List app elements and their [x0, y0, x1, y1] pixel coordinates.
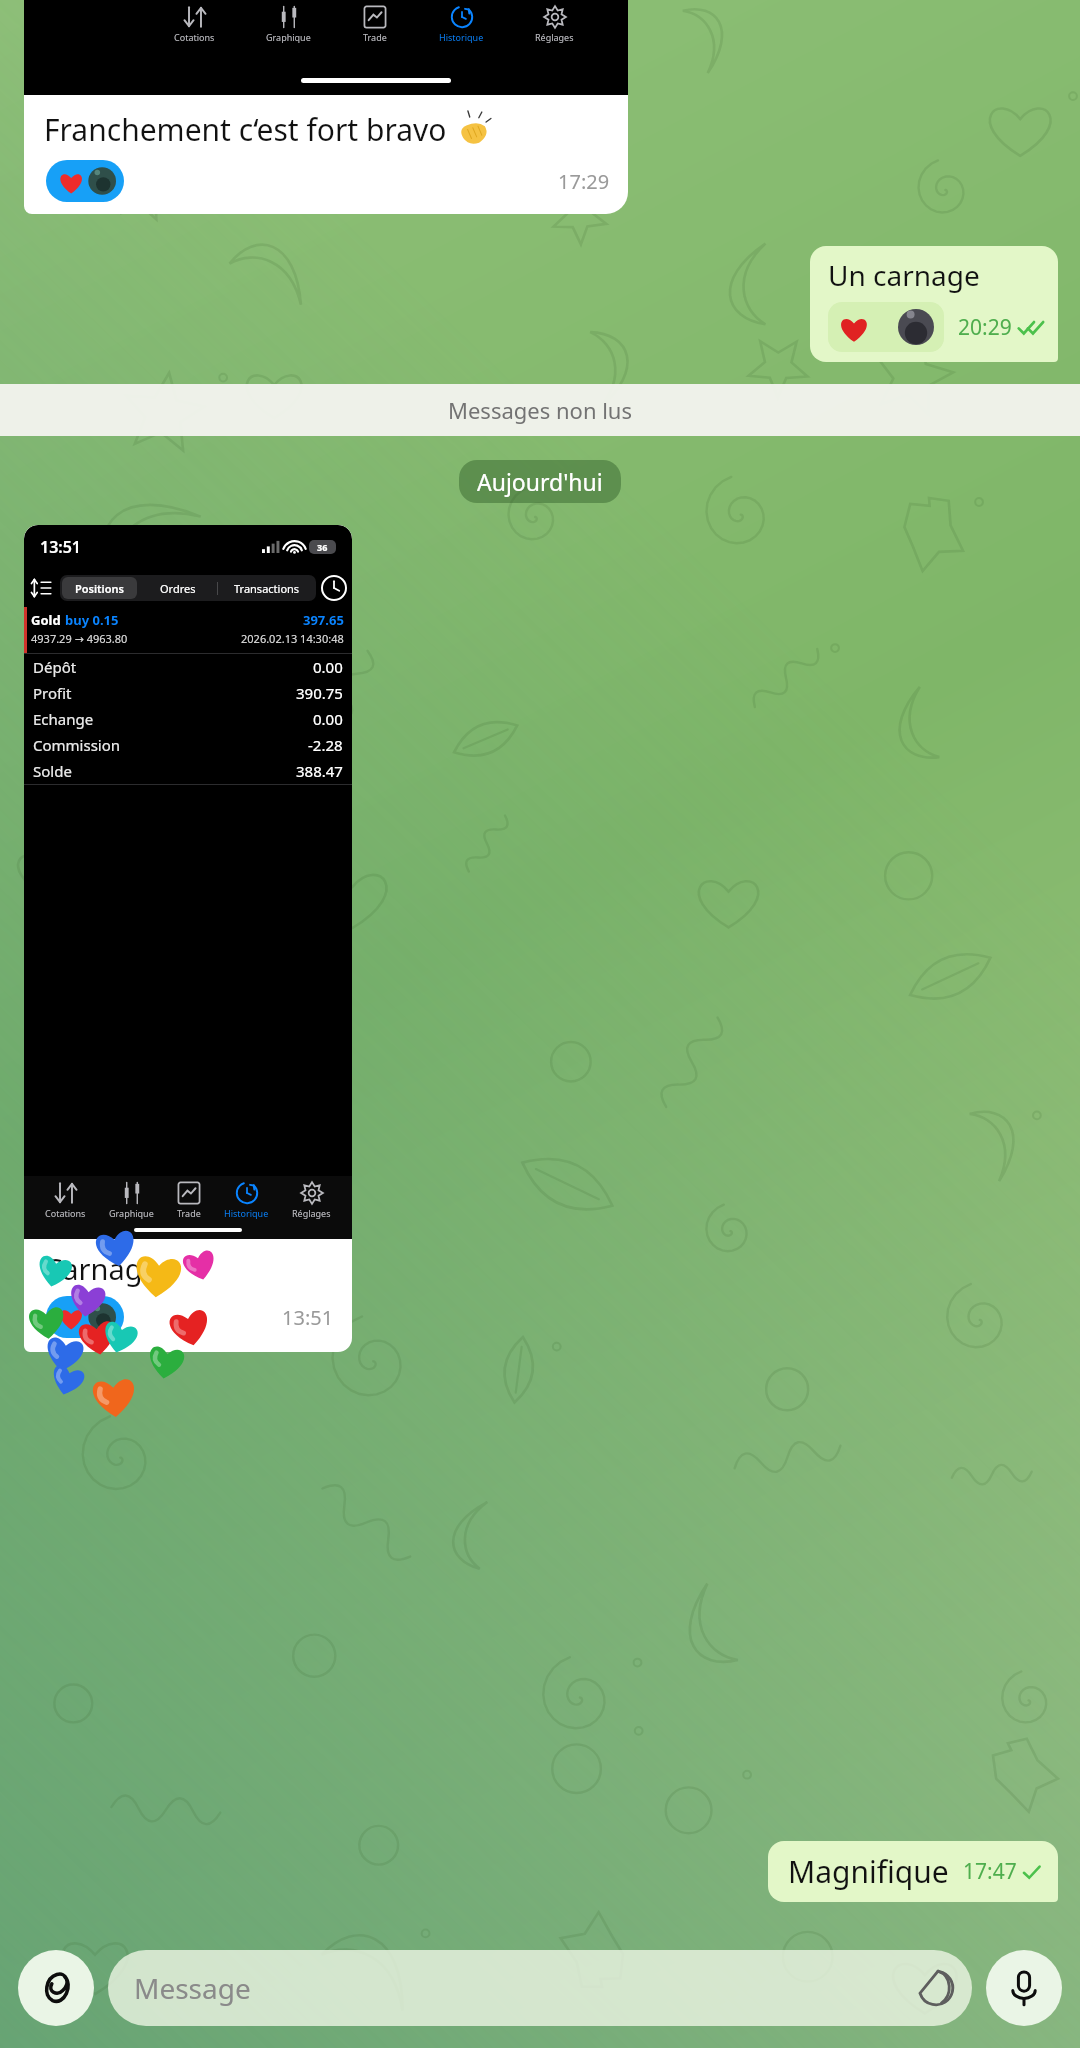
staticText: Positions: [75, 581, 124, 596]
staticText: 397.65: [303, 611, 344, 629]
staticText: Trade: [363, 31, 387, 43]
button[interactable]: Positions: [62, 577, 137, 599]
staticText: 20:29: [958, 313, 1012, 342]
button[interactable]: Cotations: [24, 0, 628, 214]
staticText: Commission: [33, 735, 121, 755]
button[interactable]: Cotations: [172, 6, 217, 43]
staticText: Historique: [439, 31, 484, 43]
button[interactable]: Reaction heart: [46, 1296, 124, 1338]
staticText: Franchement c‘est fort bravo: [44, 109, 447, 150]
staticText: Réglages: [535, 31, 574, 43]
staticText: Solde: [33, 761, 72, 781]
staticText: Réglages: [292, 1207, 331, 1219]
staticText: 13:51: [282, 1304, 334, 1331]
button[interactable]: 13:51: [24, 525, 352, 1352]
staticText: Carnage: [44, 1249, 159, 1288]
button[interactable]: Réglages: [290, 1182, 333, 1219]
button[interactable]: Attach: [18, 1950, 94, 2026]
staticText: Messages non lus: [448, 395, 633, 425]
staticText: Graphique: [109, 1207, 154, 1219]
staticText: 0.00: [313, 657, 343, 677]
staticText: Echange: [33, 709, 94, 729]
staticText: -2.28: [308, 735, 343, 755]
button[interactable]: Trade: [175, 1182, 203, 1219]
staticText: Cotations: [45, 1207, 86, 1219]
button[interactable]: Graphique: [264, 6, 313, 43]
button[interactable]: Historique: [222, 1182, 271, 1219]
staticText: Graphique: [266, 31, 311, 43]
staticText: 388.47: [296, 761, 343, 781]
button[interactable]: Reaction heart: [828, 302, 944, 352]
staticText: 4937.29 → 4963.80: [31, 631, 128, 646]
button[interactable]: Reaction heart: [46, 160, 124, 202]
button[interactable]: Réglages: [533, 6, 576, 43]
staticText: Magnifique: [788, 1851, 949, 1892]
staticText: Trade: [177, 1207, 201, 1219]
staticText: Cotations: [174, 31, 215, 43]
button[interactable]: Graphique: [107, 1182, 156, 1219]
staticText: Profit: [33, 683, 72, 703]
button[interactable]: Magnifique: [768, 1841, 1058, 1902]
button[interactable]: Stickers: [916, 1968, 956, 2008]
staticText: Historique: [224, 1207, 269, 1219]
staticText: 0.00: [313, 709, 343, 729]
staticText: Aujourd'hui: [477, 466, 603, 497]
button[interactable]: Message: [108, 1950, 972, 2026]
staticText: Transactions: [234, 581, 300, 596]
button[interactable]: Record voice message: [986, 1950, 1062, 2026]
staticText: Ordres: [160, 581, 196, 596]
button[interactable]: Un carnage: [810, 246, 1058, 362]
staticText: 36: [317, 541, 328, 553]
staticText: 17:29: [558, 168, 610, 195]
button[interactable]: History: [324, 578, 344, 598]
staticText: Message: [134, 1969, 251, 2007]
button[interactable]: Aujourd'hui: [477, 466, 603, 497]
staticText: Dépôt: [33, 657, 77, 677]
staticText: 2026.02.13 14:30:48: [241, 631, 344, 646]
staticText: Gold: [31, 611, 65, 629]
button[interactable]: Ordres: [139, 575, 217, 601]
button[interactable]: Trade: [361, 6, 389, 43]
button[interactable]: Sort: [32, 578, 52, 598]
staticText: 17:47: [963, 1857, 1017, 1886]
button[interactable]: Cotations: [43, 1182, 88, 1219]
button[interactable]: Transactions: [218, 575, 316, 601]
staticText: buy 0.15: [65, 611, 119, 629]
button[interactable]: Historique: [437, 6, 486, 43]
staticText: 390.75: [296, 683, 343, 703]
staticText: 13:51: [40, 536, 82, 558]
staticText: Un carnage: [828, 256, 980, 294]
